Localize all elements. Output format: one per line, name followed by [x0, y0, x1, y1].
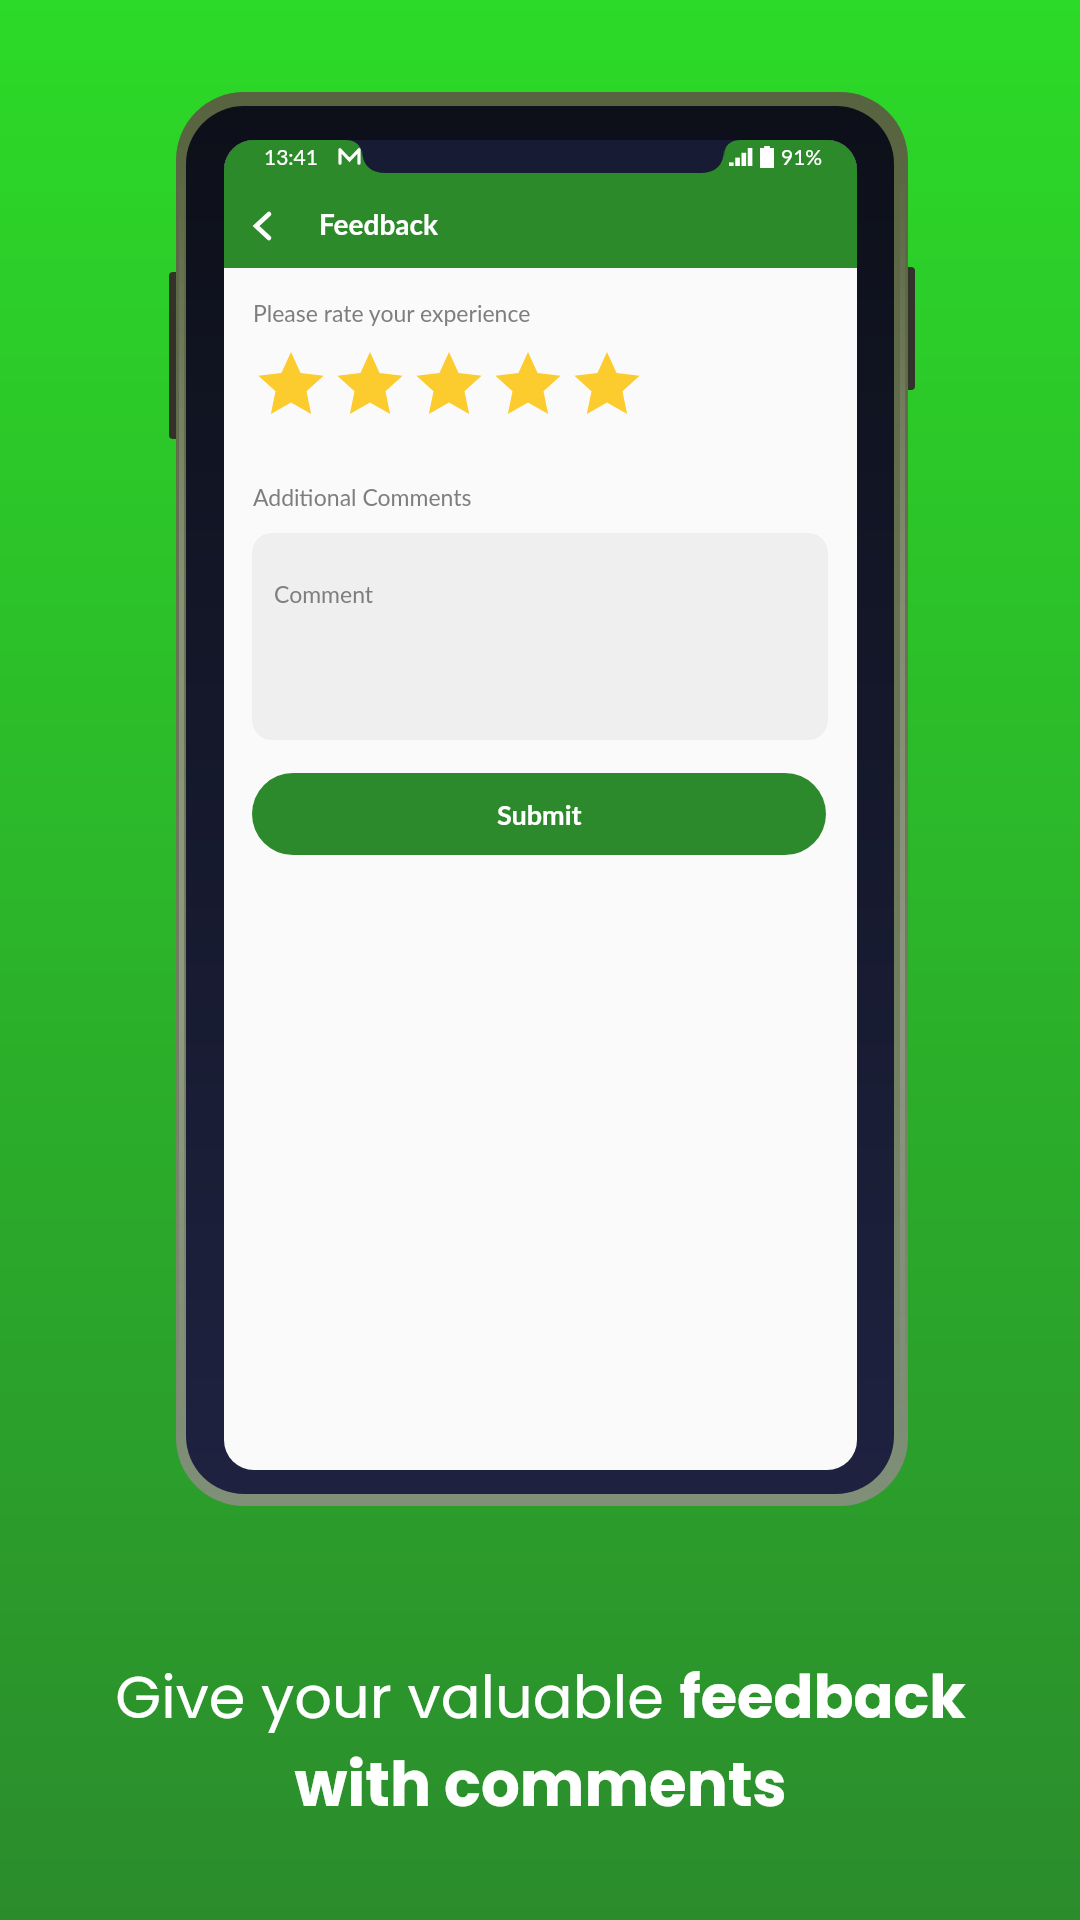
button[interactable]: Rate 3 star	[416, 352, 482, 414]
staticText: Submit	[497, 798, 582, 830]
staticText: with comments	[294, 1742, 787, 1827]
button[interactable]: Rate 4 star	[495, 352, 561, 414]
staticText: Give your valuable feedback	[115, 1656, 966, 1739]
staticText: Comment	[274, 580, 374, 608]
staticText: Additional Comments	[253, 483, 472, 511]
staticText: 91%	[781, 144, 823, 169]
button[interactable]: Rate 1 star	[258, 352, 324, 414]
staticText: 13:41	[264, 144, 318, 169]
button[interactable]: Rate 5 star	[574, 352, 640, 414]
button[interactable]: Back	[238, 202, 286, 250]
button[interactable]: Submit	[252, 773, 826, 855]
staticText: Please rate your experience	[253, 299, 531, 327]
button[interactable]: Rate 2 star	[337, 352, 403, 414]
button[interactable]: Comment	[252, 533, 828, 740]
staticText: Feedback	[319, 207, 438, 241]
